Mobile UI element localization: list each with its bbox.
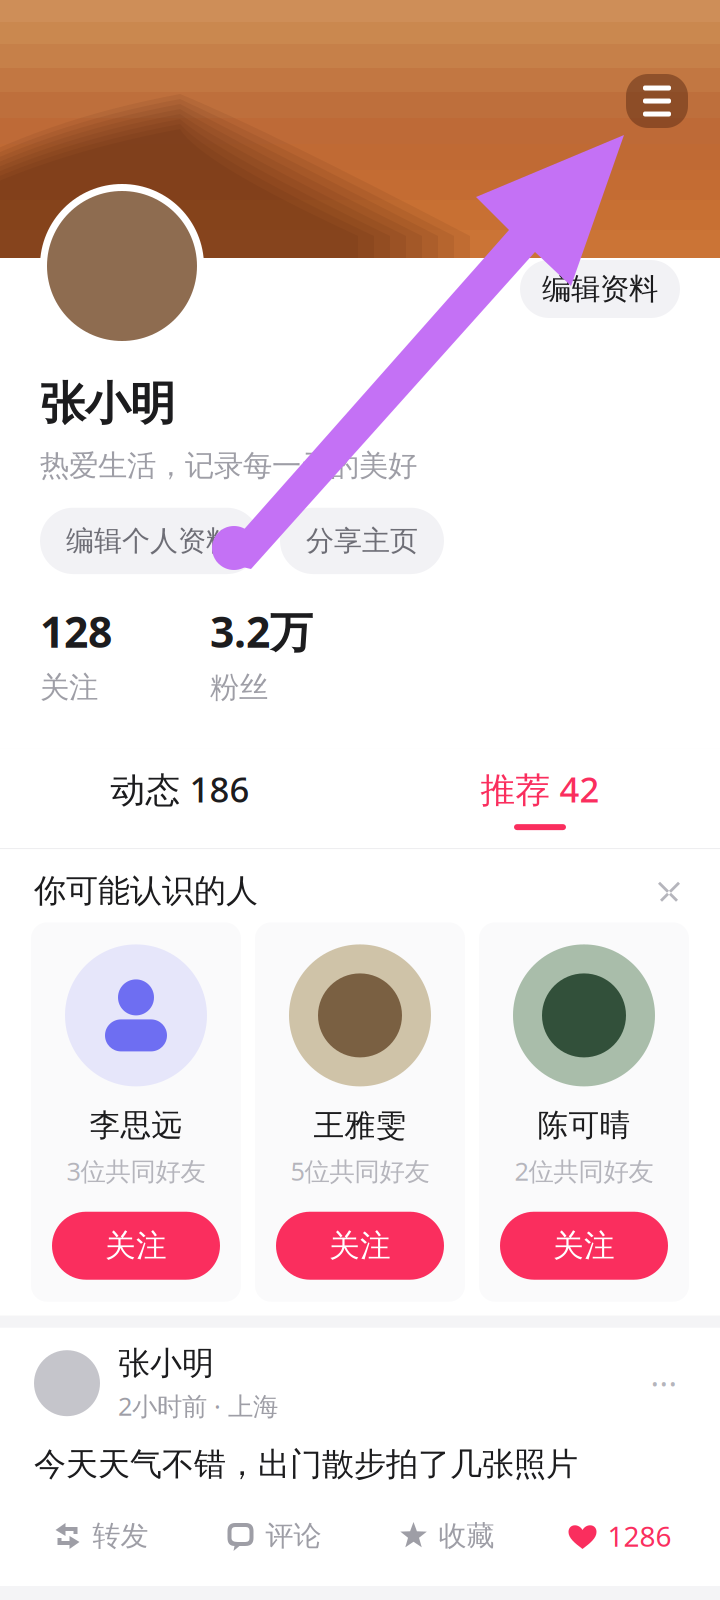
button[interactable]: 动态 186 — [0, 748, 360, 848]
staticText: 关注 — [105, 1227, 167, 1265]
staticText: 2位共同好友 — [514, 1154, 653, 1188]
button[interactable]: Menu — [626, 74, 688, 128]
button[interactable]: 128 — [40, 604, 210, 704]
button[interactable]: More — [642, 1361, 686, 1405]
staticText: ··· — [650, 1362, 677, 1404]
staticText: 评论 — [265, 1519, 321, 1553]
button[interactable]: 编辑资料 — [520, 260, 680, 318]
staticText: 1286 — [607, 1517, 671, 1555]
button[interactable]: 转发 — [14, 1508, 187, 1564]
staticText: 2小时前 · 上海 — [118, 1389, 278, 1423]
staticText: 128 — [40, 603, 112, 659]
staticText: 分享主页 — [306, 524, 418, 558]
staticText: 3位共同好友 — [66, 1154, 205, 1188]
button[interactable]: 编辑个人资料 — [40, 508, 260, 574]
staticText: 王雅雯 — [313, 1106, 406, 1144]
staticText: 你可能认识的人 — [34, 871, 258, 910]
staticText: 粉丝 — [210, 669, 268, 705]
button[interactable]: 3.2万 — [210, 604, 380, 704]
staticText: 5位共同好友 — [290, 1154, 429, 1188]
staticText: 关注 — [553, 1227, 615, 1265]
staticText: 推荐 42 — [480, 766, 599, 812]
button[interactable]: 分享主页 — [280, 508, 444, 574]
staticText: 编辑资料 — [542, 271, 658, 307]
staticText: 今天天气不错，出门散步拍了几张照片 — [34, 1445, 578, 1484]
button[interactable]: 李思远 — [31, 922, 241, 1302]
staticText: 关注 — [329, 1227, 391, 1265]
button[interactable]: 推荐 42 — [360, 748, 720, 848]
staticText: 陈可晴 — [537, 1106, 630, 1144]
staticText: 收藏 — [438, 1519, 494, 1553]
button[interactable]: Dismiss — [652, 874, 686, 908]
staticText: 张小明 — [40, 376, 175, 432]
staticText: 李思远 — [89, 1106, 182, 1144]
button[interactable]: 王雅雯 — [255, 922, 465, 1302]
button[interactable]: 评论 — [187, 1508, 360, 1564]
button[interactable]: 收藏 — [360, 1508, 533, 1564]
button[interactable]: 1286 — [533, 1508, 706, 1564]
staticText: 3.2万 — [210, 603, 313, 659]
staticText: 转发 — [92, 1519, 148, 1553]
staticText: 张小明 — [118, 1344, 214, 1383]
button[interactable]: 陈可晴 — [479, 922, 689, 1302]
staticText: 动态 186 — [110, 766, 249, 812]
staticText: 关注 — [40, 669, 98, 705]
staticText: 热爱生活，记录每一天的美好 — [40, 448, 417, 484]
staticText: 编辑个人资料 — [66, 524, 234, 558]
